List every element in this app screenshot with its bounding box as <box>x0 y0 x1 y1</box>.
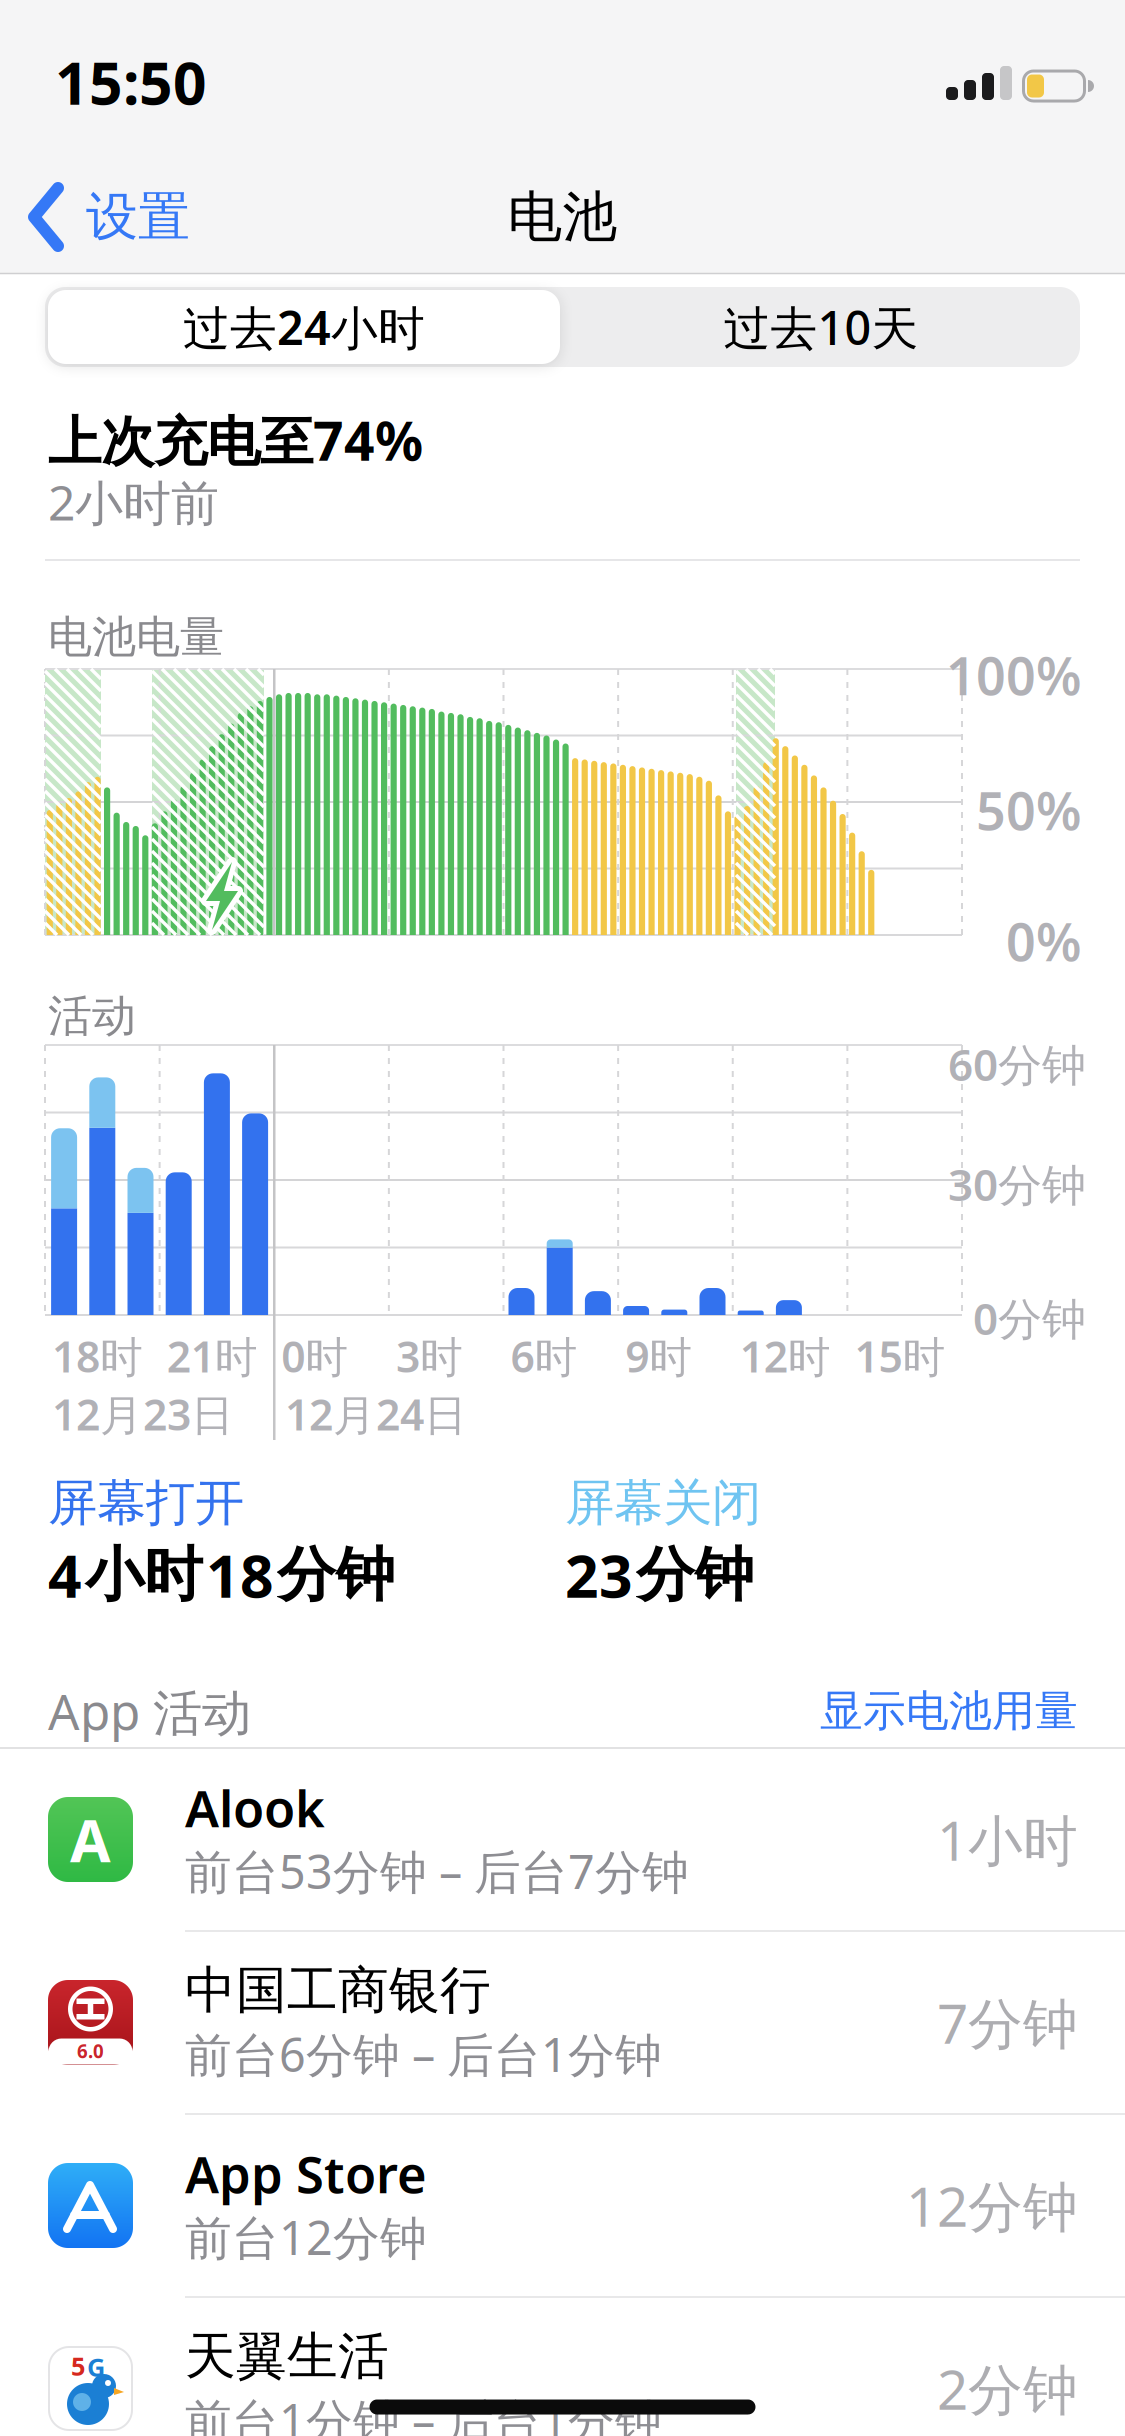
button[interactable]: 6.0 <box>0 1931 1125 2114</box>
staticText: 0% <box>1006 906 1082 976</box>
staticText: 23 <box>565 1536 633 1614</box>
staticText: 6.0 <box>77 2039 104 2063</box>
button[interactable]: 过去24小时 <box>45 287 563 367</box>
button[interactable]: 设置 <box>28 172 258 262</box>
staticText: 3时 <box>396 1328 463 1384</box>
staticText: 18时 <box>52 1328 143 1384</box>
staticText: A <box>70 1800 111 1878</box>
button[interactable]: 过去10天 <box>571 287 1071 367</box>
staticText: 15时 <box>854 1328 945 1384</box>
staticText: 前台6分钟 – 后台1分钟 <box>185 2023 662 2085</box>
staticText: 电池电量 <box>48 610 224 664</box>
staticText: 分钟 <box>636 1539 754 1611</box>
staticText: 上次充电至74% <box>48 405 423 475</box>
staticText: 1小时 <box>937 1803 1078 1876</box>
staticText: 电池 <box>507 183 617 250</box>
staticText: 屏幕打开 <box>48 1473 244 1533</box>
staticText: 活动 <box>48 989 136 1043</box>
staticText: 12分钟 <box>906 2169 1078 2242</box>
staticText: 15:50 <box>55 43 207 121</box>
staticText: 50% <box>976 775 1082 845</box>
staticText: 7分钟 <box>937 1986 1078 2059</box>
staticText: App 活动 <box>48 1678 251 1744</box>
button[interactable] <box>45 287 1080 367</box>
staticText: 30分钟 <box>948 1155 1086 1213</box>
staticText: 屏幕关闭 <box>565 1473 761 1533</box>
staticText: 分钟 <box>277 1539 395 1611</box>
staticText: 2分钟 <box>937 2352 1078 2425</box>
staticText: 显示电池用量 <box>820 1685 1078 1737</box>
staticText: 60分钟 <box>948 1035 1086 1093</box>
staticText: 18 <box>206 1536 274 1614</box>
button[interactable]: 5 <box>0 2297 1125 2436</box>
staticText: 过去10天 <box>723 296 918 358</box>
staticText: 4 <box>48 1536 82 1614</box>
staticText: 天翼生活 <box>185 2325 389 2388</box>
staticText: 0分钟 <box>973 1289 1086 1347</box>
staticText: 前台12分钟 <box>185 2206 427 2268</box>
staticText: App Store <box>185 2140 427 2207</box>
staticText: G <box>87 2350 105 2384</box>
staticText: 小时 <box>85 1539 203 1611</box>
staticText: 12时 <box>740 1328 831 1384</box>
button[interactable]: A <box>0 1748 1125 1931</box>
staticText: 前台53分钟 – 后台7分钟 <box>185 1840 689 1902</box>
staticText: 6时 <box>510 1328 577 1384</box>
staticText: 100% <box>946 640 1082 710</box>
button[interactable]: App Store <box>0 2114 1125 2297</box>
staticText: 5 <box>71 2349 85 2383</box>
staticText: 2小时前 <box>48 470 219 534</box>
staticText: 0时 <box>281 1328 348 1384</box>
staticText: 设置 <box>86 185 190 249</box>
staticText: 中国工商银行 <box>185 1959 491 2022</box>
staticText: Alook <box>185 1774 325 1841</box>
staticText: 21时 <box>167 1328 258 1384</box>
staticText: 12月23日 <box>52 1386 234 1442</box>
staticText: 9时 <box>625 1328 692 1384</box>
button[interactable]: 显示电池用量 <box>578 1685 1078 1737</box>
staticText: 12月24日 <box>285 1386 467 1442</box>
staticText: 过去24小时 <box>183 296 425 358</box>
staticText: 前台1分钟 – 后台1分钟 <box>185 2389 662 2436</box>
